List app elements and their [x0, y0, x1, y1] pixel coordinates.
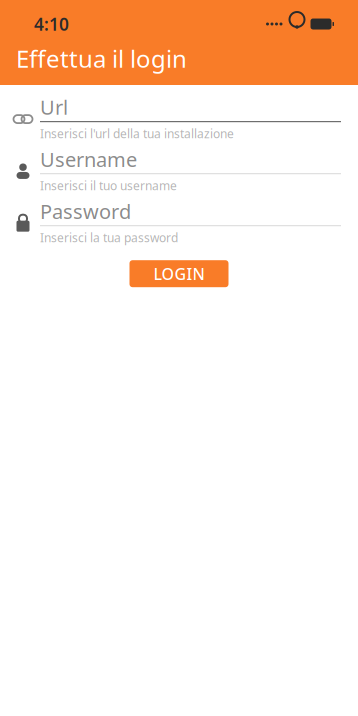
staticText: LOGIN [153, 263, 204, 284]
button[interactable]: LOGIN [129, 260, 228, 287]
staticText: Url [40, 94, 68, 120]
staticText: Inserisci la tua password [40, 230, 178, 246]
staticText: Effettua il login [16, 43, 187, 74]
staticText: Username [40, 146, 137, 172]
staticText: Inserisci il tuo username [40, 178, 177, 194]
staticText: Password [40, 198, 131, 224]
staticText: 4:10 [34, 12, 69, 35]
staticText: Inserisci l'url della tua installazione [40, 126, 234, 142]
